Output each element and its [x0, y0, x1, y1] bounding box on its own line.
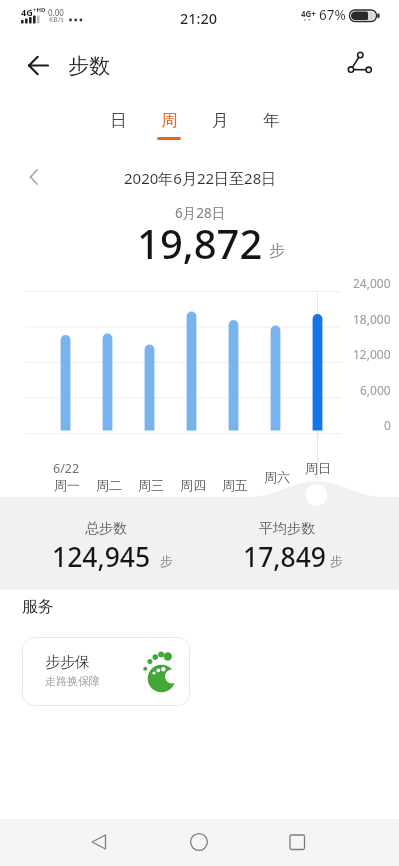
button[interactable]: [85, 828, 113, 856]
staticText: 6月28日: [175, 204, 226, 222]
button[interactable]: [283, 828, 311, 856]
staticText: 周一: [54, 477, 80, 493]
staticText: 步: [269, 241, 285, 261]
button[interactable]: 周: [149, 104, 189, 136]
button[interactable]: [22, 164, 46, 190]
button[interactable]: 日: [98, 104, 138, 136]
staticText: 6,000: [360, 382, 391, 398]
staticText: 21:20: [180, 8, 218, 28]
staticText: 0: [384, 417, 391, 433]
staticText: 周二: [96, 477, 122, 493]
staticText: 周六: [264, 469, 290, 485]
staticText: 19,872: [137, 216, 263, 270]
staticText: 步: [330, 553, 343, 569]
button[interactable]: [185, 828, 213, 856]
staticText: 总步数: [85, 520, 127, 538]
staticText: 周日: [305, 460, 331, 476]
staticText: 步: [160, 553, 173, 569]
staticText: 年: [263, 110, 280, 131]
button[interactable]: 年: [251, 104, 291, 136]
staticText: 周五: [222, 477, 248, 493]
button[interactable]: [20, 47, 56, 83]
staticText: 步步保: [45, 653, 90, 672]
staticText: +HD: [33, 6, 46, 14]
staticText: 4G: [21, 6, 33, 18]
button[interactable]: [340, 45, 380, 85]
staticText: 0.00: [48, 7, 64, 18]
staticText: 走路换保障: [45, 674, 100, 688]
staticText: 周: [161, 110, 178, 131]
staticText: 服务: [22, 597, 54, 617]
staticText: 日: [110, 110, 127, 131]
staticText: 67%: [319, 6, 346, 24]
staticText: 月: [212, 110, 229, 131]
staticText: 周四: [180, 477, 206, 493]
staticText: 步数: [68, 53, 110, 79]
staticText: 18,000: [353, 311, 391, 327]
staticText: 12,000: [353, 346, 391, 362]
staticText: 24,000: [353, 275, 391, 291]
staticText: 4G+: [301, 8, 316, 19]
button[interactable]: 月: [200, 104, 240, 136]
staticText: 周三: [138, 477, 164, 493]
staticText: 平均步数: [259, 520, 315, 538]
staticText: KB/s: [49, 15, 64, 25]
staticText: 2020年6月22日至28日: [124, 168, 277, 188]
button[interactable]: 步步保: [22, 637, 190, 706]
staticText: 124,945: [52, 539, 151, 575]
staticText: 17,849: [243, 539, 327, 575]
staticText: 6/22: [53, 460, 80, 477]
